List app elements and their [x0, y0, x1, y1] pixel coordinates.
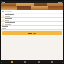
button[interactable]: Featured photos	[1, 3, 63, 10]
button[interactable]	[1, 14, 63, 17]
button[interactable]	[1, 26, 63, 29]
button[interactable]: Search	[23, 60, 27, 63]
button[interactable]	[2, 31, 62, 35]
button[interactable]	[1, 18, 63, 21]
button[interactable]: Home	[10, 60, 14, 63]
button[interactable]	[1, 10, 63, 13]
button[interactable]	[1, 22, 63, 25]
button[interactable]: Profile	[50, 60, 54, 63]
button[interactable]: Saved	[37, 60, 41, 63]
